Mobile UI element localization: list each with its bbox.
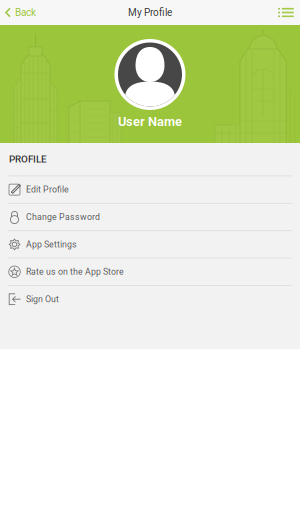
button[interactable]: Rate us on the App Store: [0, 258, 300, 285]
staticText: Edit Profile: [26, 184, 69, 195]
button[interactable]: Change Password: [0, 203, 300, 230]
staticText: User Name: [118, 114, 182, 129]
staticText: App Settings: [26, 239, 77, 249]
staticText: Sign Out: [26, 294, 59, 304]
button[interactable]: App Settings: [0, 230, 300, 258]
button[interactable]: Edit Profile: [0, 175, 300, 203]
button[interactable]: Back: [0, 0, 42, 24]
staticText: Change Password: [26, 212, 100, 222]
staticText: My Profile: [128, 7, 172, 18]
button[interactable]: Sign Out: [0, 285, 300, 312]
staticText: Back: [15, 7, 36, 18]
staticText: PROFILE: [9, 153, 47, 165]
button[interactable]: Menu: [270, 0, 300, 24]
staticText: Rate us on the App Store: [26, 267, 124, 277]
